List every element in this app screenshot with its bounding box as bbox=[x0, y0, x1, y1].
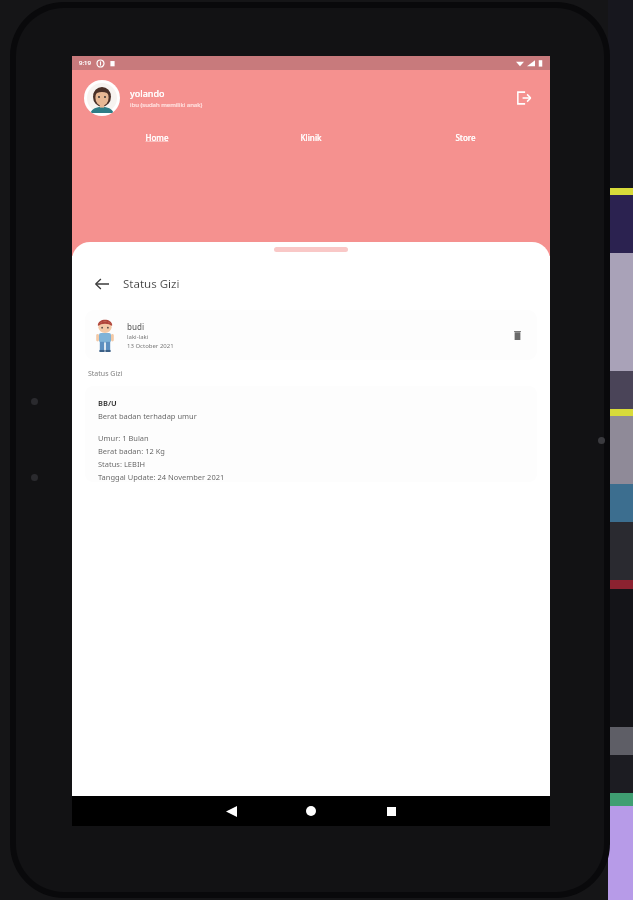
staticText: ibu (sudah memiliki anak) bbox=[130, 101, 203, 109]
staticText: Umur: 1 Bulan bbox=[98, 433, 149, 443]
staticText: laki-laki bbox=[127, 333, 149, 341]
button[interactable]: Back bbox=[89, 271, 115, 297]
button[interactable]: Klinik bbox=[234, 126, 388, 149]
button[interactable]: budi bbox=[85, 310, 537, 360]
button[interactable]: Delete bbox=[507, 325, 527, 345]
staticText: Klinik bbox=[300, 132, 322, 143]
button[interactable]: Profile bbox=[84, 80, 120, 116]
button[interactable]: Home bbox=[300, 800, 322, 822]
staticText: BB/U bbox=[98, 398, 117, 408]
button[interactable]: Store bbox=[388, 126, 542, 149]
staticText: Status: LEBIH bbox=[98, 459, 146, 469]
staticText: Status Gizi bbox=[123, 276, 180, 292]
button[interactable]: BB/U bbox=[85, 386, 537, 482]
staticText: Status Gizi bbox=[88, 369, 123, 379]
button[interactable]: Back bbox=[220, 800, 242, 822]
staticText: Tanggal Update: 24 November 2021 bbox=[98, 472, 225, 482]
staticText: budi bbox=[127, 321, 145, 332]
button[interactable]: Logout bbox=[512, 86, 536, 110]
staticText: Store bbox=[455, 132, 476, 143]
staticText: 13 October 2021 bbox=[127, 342, 174, 350]
button[interactable]: Home bbox=[80, 126, 234, 149]
staticText: 9:19 bbox=[79, 59, 91, 67]
staticText: Berat badan: 12 Kg bbox=[98, 446, 165, 456]
staticText: yolando bbox=[130, 87, 165, 99]
staticText: Berat badan terhadap umur bbox=[98, 411, 197, 421]
button[interactable]: Recents bbox=[380, 800, 402, 822]
staticText: Home bbox=[145, 132, 169, 143]
